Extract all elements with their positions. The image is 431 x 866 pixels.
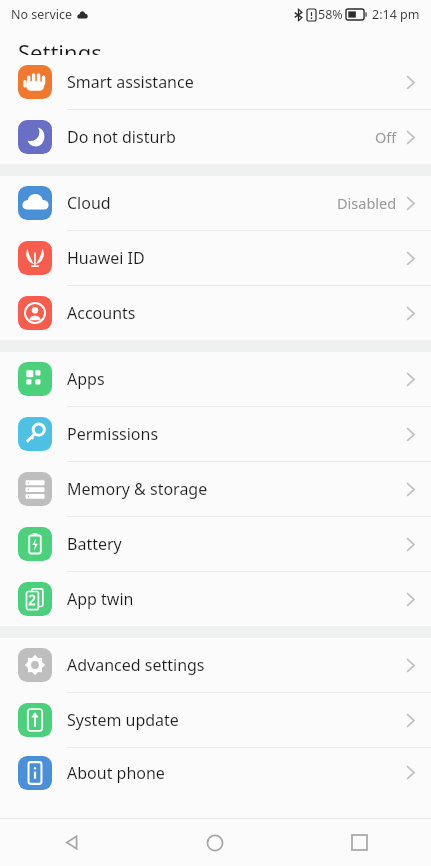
staticText: Disabled xyxy=(337,193,397,213)
button[interactable]: About phone xyxy=(0,748,431,797)
staticText: No service xyxy=(11,6,73,23)
staticText: Accounts xyxy=(67,302,406,324)
staticText: System update xyxy=(67,709,406,731)
staticText: Cloud xyxy=(67,192,337,214)
staticText: Apps xyxy=(67,368,406,390)
button[interactable]: Do not disturb xyxy=(0,110,431,164)
button[interactable]: Recent apps xyxy=(287,819,431,866)
staticText: Huawei ID xyxy=(67,247,406,269)
button[interactable]: Permissions xyxy=(0,407,431,462)
button[interactable]: System update xyxy=(0,693,431,748)
staticText: Battery xyxy=(67,533,406,555)
button[interactable]: Home xyxy=(143,819,287,866)
button[interactable]: Advanced settings xyxy=(0,638,431,693)
staticText: Do not disturb xyxy=(67,126,375,148)
button[interactable]: Apps xyxy=(0,352,431,407)
staticText: Settings xyxy=(18,37,102,67)
staticText: App twin xyxy=(67,588,406,610)
staticText: About phone xyxy=(67,762,406,784)
staticText: 2:14 pm xyxy=(372,6,420,23)
staticText: Smart assistance xyxy=(67,71,406,93)
button[interactable]: Memory & storage xyxy=(0,462,431,517)
staticText: Off xyxy=(375,127,397,147)
staticText: 58% xyxy=(318,6,343,23)
button[interactable]: Cloud xyxy=(0,176,431,231)
staticText: Permissions xyxy=(67,423,406,445)
button[interactable]: App twin xyxy=(0,572,431,626)
staticText: Advanced settings xyxy=(67,654,406,676)
button[interactable]: Accounts xyxy=(0,286,431,340)
button[interactable]: Smart assistance xyxy=(0,55,431,110)
button[interactable]: Back xyxy=(0,819,143,866)
staticText: Memory & storage xyxy=(67,478,406,500)
button[interactable]: Huawei ID xyxy=(0,231,431,286)
button[interactable]: Battery xyxy=(0,517,431,572)
